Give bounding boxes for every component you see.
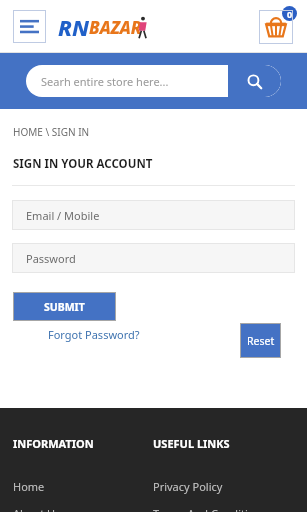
button[interactable]: Forgot Password?: [48, 327, 140, 342]
button[interactable]: About Us: [13, 506, 61, 512]
button[interactable]: SUBMIT: [13, 292, 116, 321]
staticText: SIGN IN YOUR ACCOUNT: [13, 156, 153, 172]
staticText: BAZAR: [89, 16, 142, 39]
staticText: Searh entire store here...: [41, 74, 169, 89]
staticText: 0: [287, 8, 293, 20]
button[interactable]: Home: [13, 479, 45, 494]
button[interactable]: Reset: [240, 323, 281, 358]
button[interactable]: Cart, 0 items: [259, 10, 293, 44]
button[interactable]: Searh entire store here...: [26, 65, 281, 97]
staticText: RN: [58, 12, 89, 42]
staticText: INFORMATION: [13, 436, 94, 451]
staticText: Password: [26, 251, 76, 266]
button[interactable]: Search: [228, 65, 281, 97]
staticText: Email / Mobile: [26, 208, 100, 223]
staticText: USEFUL LINKS: [153, 436, 230, 451]
button[interactable]: Terms And Conditions: [153, 506, 267, 512]
staticText: HOME \ SIGN IN: [13, 125, 90, 139]
staticText: Reset: [247, 334, 275, 348]
button[interactable]: Menu: [13, 10, 46, 43]
button[interactable]: Password: [12, 243, 295, 273]
button[interactable]: RN: [58, 12, 156, 42]
button[interactable]: Email / Mobile: [12, 200, 295, 230]
button[interactable]: Privacy Policy: [153, 479, 223, 494]
button[interactable]: HOME \ SIGN IN: [13, 125, 90, 139]
staticText: SUBMIT: [44, 300, 85, 314]
